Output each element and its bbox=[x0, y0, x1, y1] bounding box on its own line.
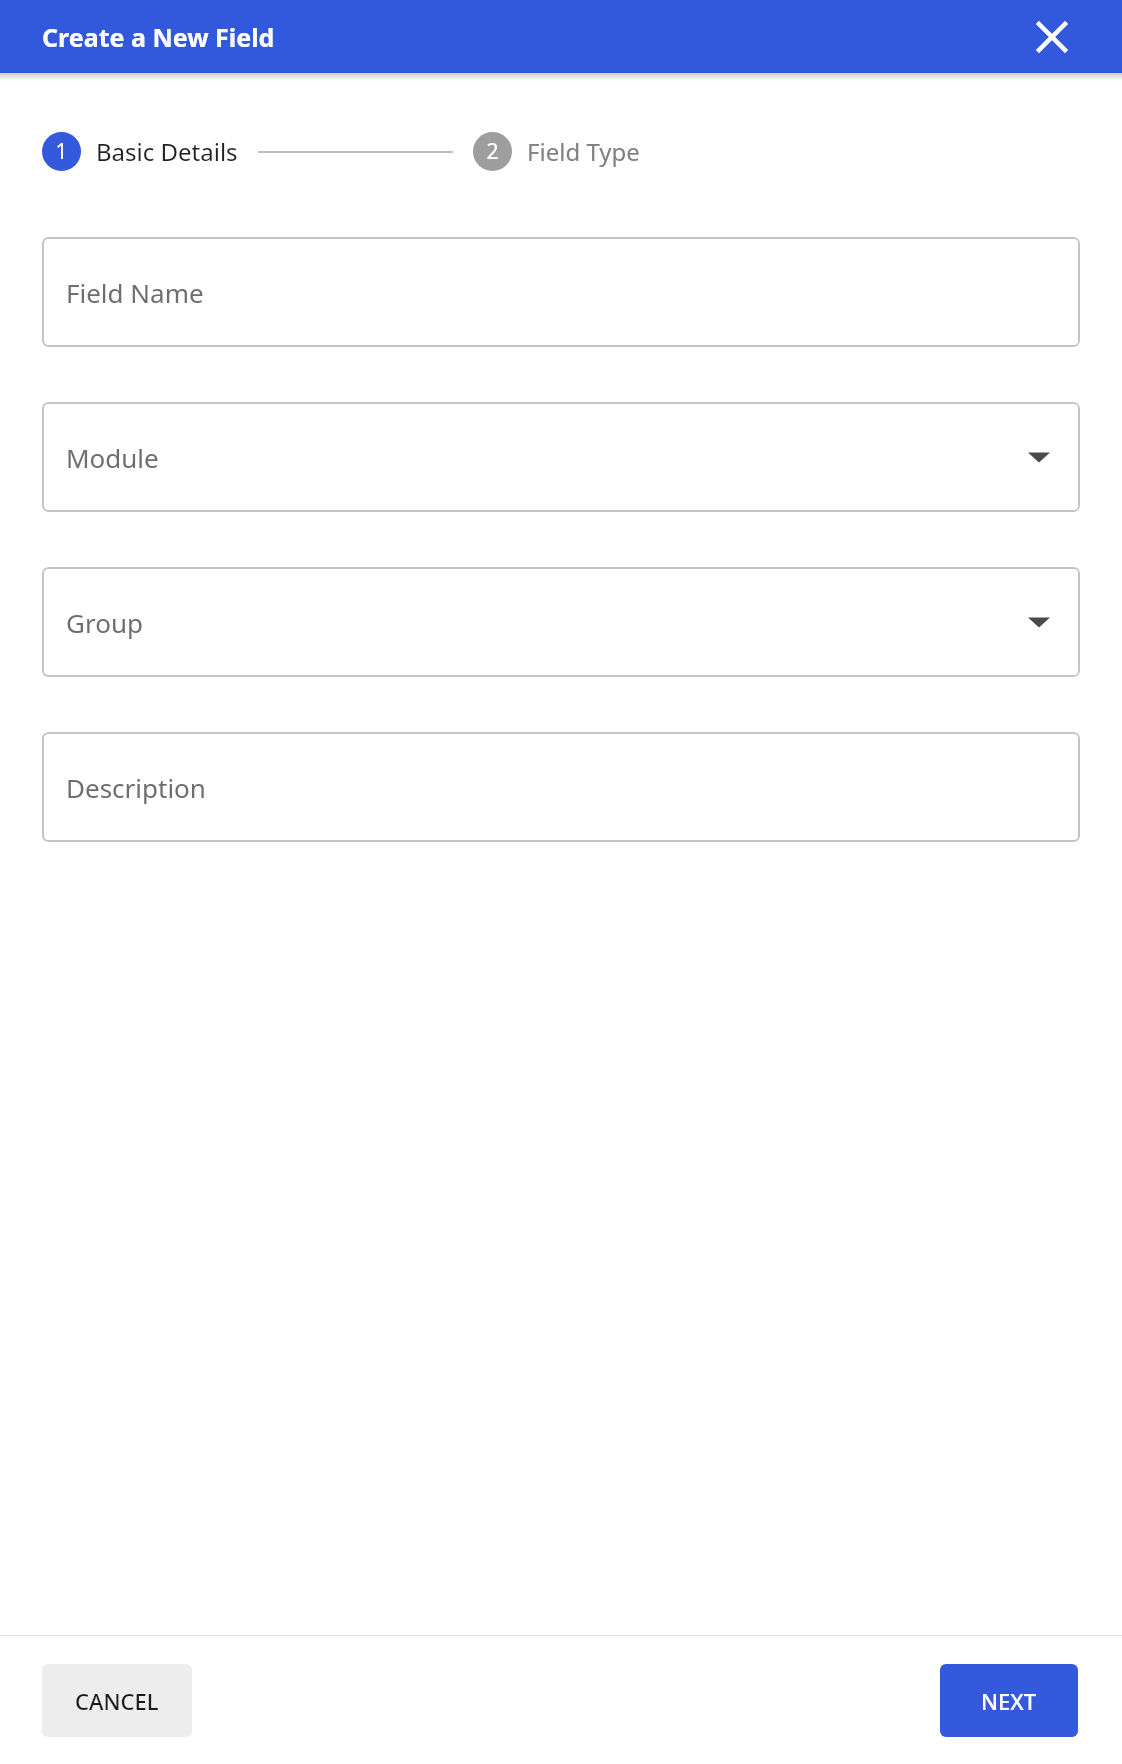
button[interactable]: Group bbox=[42, 567, 1080, 677]
staticText: Field Type bbox=[527, 135, 640, 168]
staticText: Basic Details bbox=[96, 135, 238, 168]
button[interactable]: NEXT bbox=[940, 1664, 1078, 1737]
button[interactable]: Description bbox=[42, 732, 1080, 842]
button[interactable]: Field Name bbox=[42, 237, 1080, 347]
staticText: Group bbox=[66, 605, 143, 640]
staticText: Description bbox=[66, 770, 206, 805]
button[interactable]: 1 bbox=[42, 132, 238, 171]
button[interactable]: CANCEL bbox=[42, 1664, 192, 1737]
staticText: 1 bbox=[55, 137, 68, 166]
button[interactable]: Close bbox=[1026, 11, 1078, 63]
button[interactable]: Module bbox=[42, 402, 1080, 512]
staticText: CANCEL bbox=[75, 1686, 159, 1716]
staticText: 2 bbox=[486, 137, 499, 166]
staticText: Create a New Field bbox=[42, 20, 275, 54]
button[interactable]: 2 bbox=[473, 132, 640, 171]
staticText: Module bbox=[66, 440, 159, 475]
staticText: NEXT bbox=[981, 1686, 1037, 1716]
staticText: Field Name bbox=[66, 275, 204, 310]
